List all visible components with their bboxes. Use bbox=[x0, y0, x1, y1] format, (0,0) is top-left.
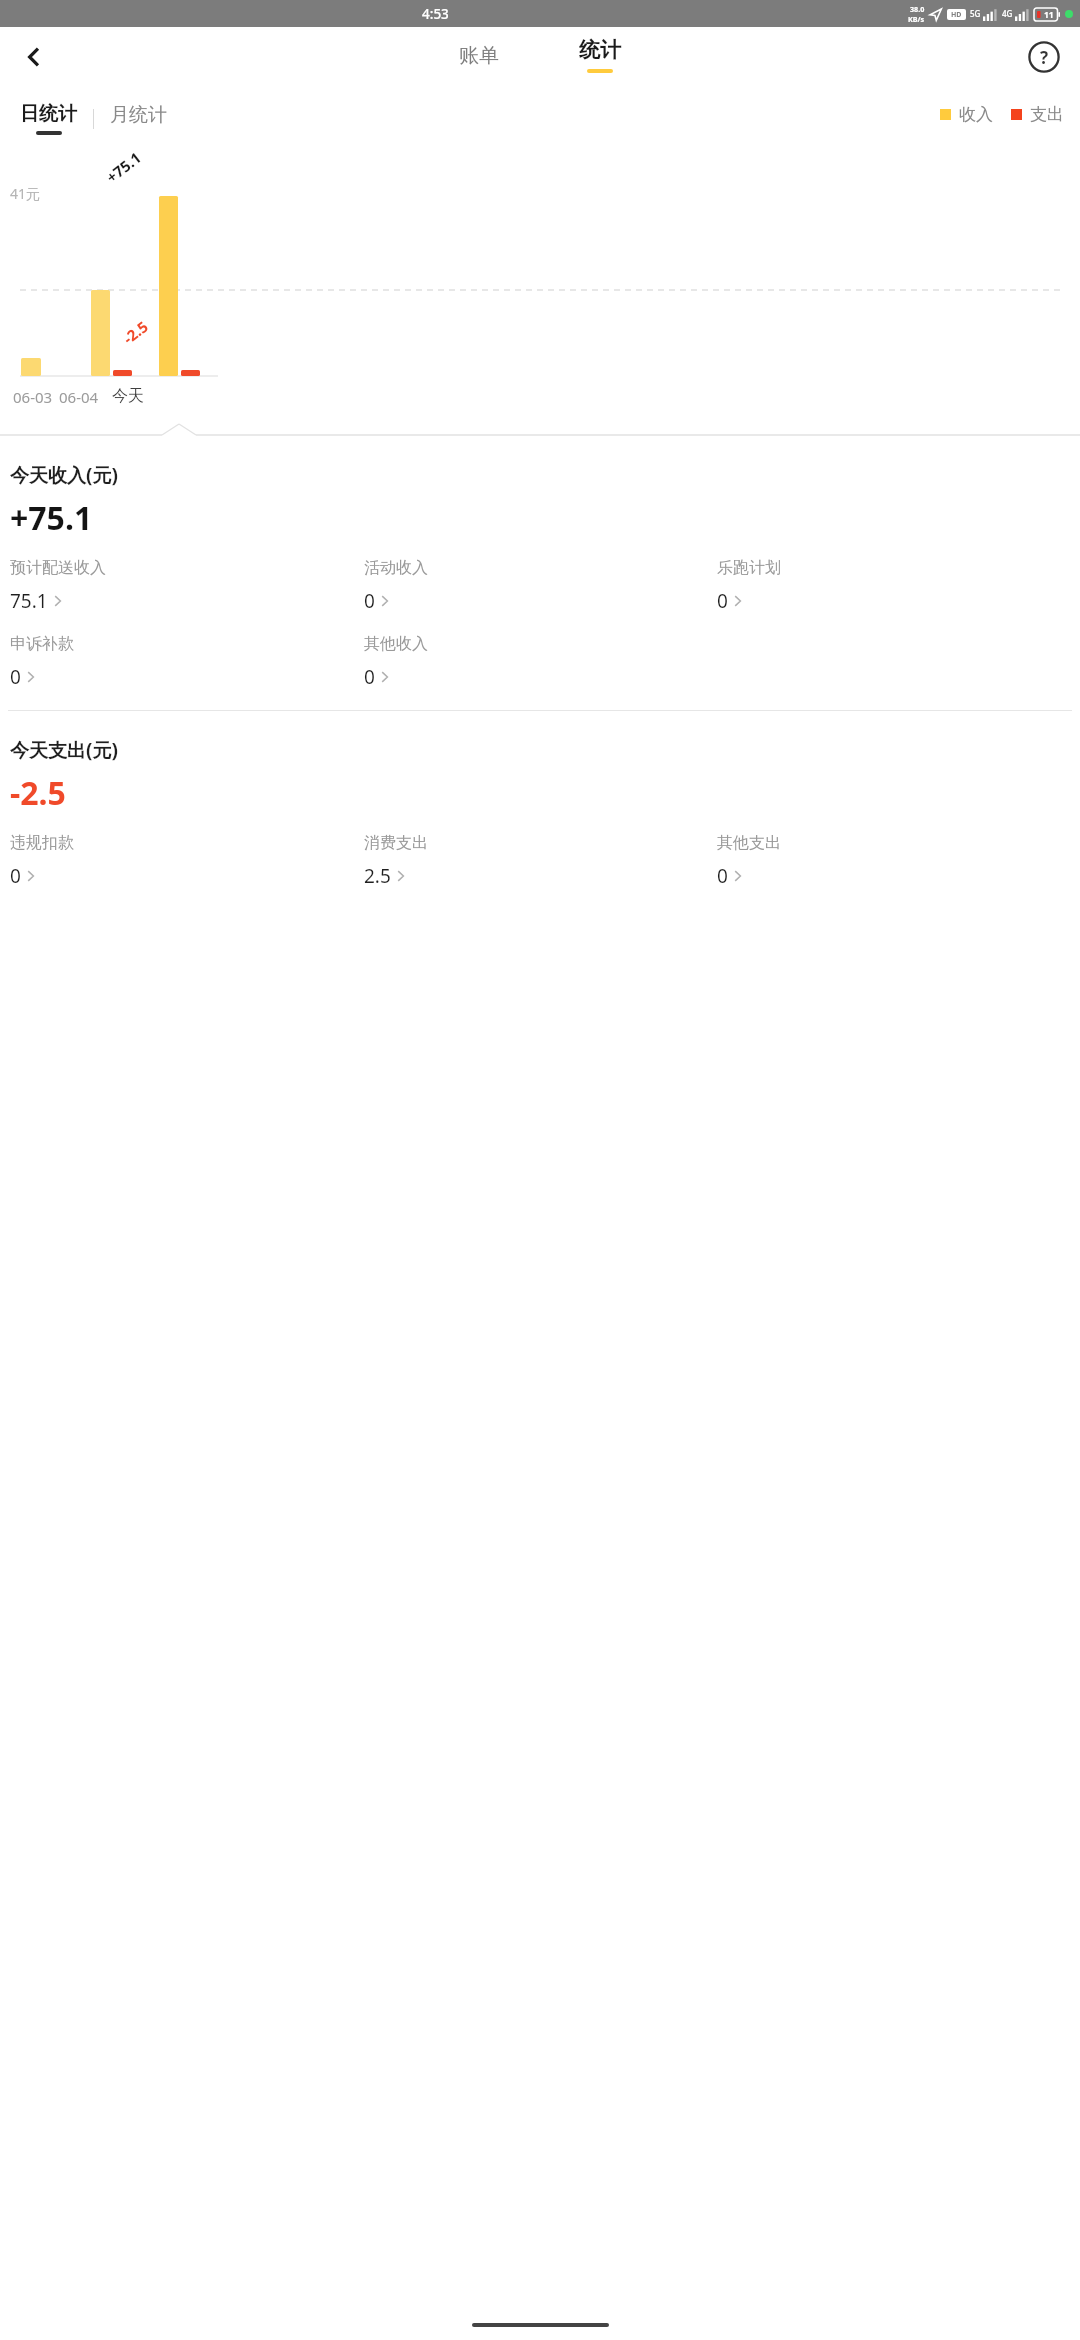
staticText: 其他支出 bbox=[717, 833, 781, 853]
staticText: 0 bbox=[364, 664, 375, 690]
button[interactable]: 账单 bbox=[441, 37, 517, 74]
staticText: 06-03 bbox=[13, 387, 53, 407]
staticText: 其他收入 bbox=[364, 634, 428, 654]
staticText: 今天 bbox=[112, 386, 144, 406]
button[interactable]: 统计 bbox=[561, 35, 639, 75]
staticText: 0 bbox=[717, 863, 728, 889]
staticText: 申诉补款 bbox=[10, 634, 74, 654]
staticText: 支出 bbox=[1030, 104, 1064, 125]
staticText: 账单 bbox=[459, 43, 499, 68]
staticText: -2.5 bbox=[10, 771, 66, 815]
staticText: 收入 bbox=[959, 104, 993, 125]
staticText: 违规扣款 bbox=[10, 833, 74, 853]
staticText: 活动收入 bbox=[364, 558, 428, 578]
button[interactable]: Help bbox=[1020, 33, 1068, 81]
staticText: 消费支出 bbox=[364, 833, 428, 853]
button[interactable]: 预计配送收入 bbox=[10, 556, 364, 616]
staticText: 0 bbox=[717, 588, 728, 614]
staticText: 11 bbox=[1044, 9, 1054, 21]
staticText: 4G bbox=[1002, 8, 1013, 19]
staticText: 今天收入(元) bbox=[10, 462, 118, 488]
button[interactable]: 日统计 bbox=[16, 102, 81, 135]
button[interactable]: 月统计 bbox=[106, 107, 171, 131]
staticText: +75.1 bbox=[102, 147, 145, 187]
button[interactable]: 其他收入 bbox=[364, 632, 717, 692]
staticText: 75.1 bbox=[10, 588, 48, 614]
staticText: ? bbox=[1040, 46, 1049, 69]
staticText: 预计配送收入 bbox=[10, 558, 106, 578]
staticText: 06-04 bbox=[59, 387, 99, 407]
staticText: 2.5 bbox=[364, 863, 391, 889]
staticText: 乐跑计划 bbox=[717, 558, 781, 578]
staticText: 5G bbox=[970, 8, 981, 19]
staticText: HD bbox=[951, 10, 962, 20]
staticText: 38.0 bbox=[910, 4, 925, 14]
staticText: 4:53 bbox=[422, 5, 449, 23]
staticText: KB/s bbox=[908, 14, 925, 24]
button[interactable]: 活动收入 bbox=[364, 556, 717, 616]
staticText: 统计 bbox=[579, 37, 621, 63]
staticText: 月统计 bbox=[110, 103, 167, 127]
staticText: -2.5 bbox=[119, 316, 152, 348]
button[interactable]: 申诉补款 bbox=[10, 632, 364, 692]
staticText: 今天支出(元) bbox=[10, 737, 118, 763]
staticText: +75.1 bbox=[10, 496, 93, 540]
staticText: 41元 bbox=[10, 184, 41, 203]
button[interactable]: 消费支出 bbox=[364, 831, 717, 891]
staticText: 日统计 bbox=[20, 102, 77, 126]
staticText: 0 bbox=[10, 863, 21, 889]
staticText: 0 bbox=[10, 664, 21, 690]
button[interactable]: 其他支出 bbox=[717, 831, 1070, 891]
button[interactable]: 乐跑计划 bbox=[717, 556, 1070, 616]
staticText: 0 bbox=[364, 588, 375, 614]
button[interactable]: 违规扣款 bbox=[10, 831, 364, 891]
button[interactable]: Back bbox=[10, 33, 58, 81]
